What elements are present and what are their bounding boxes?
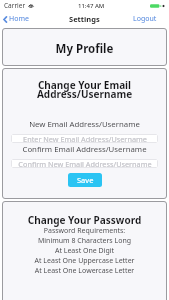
staticText: At Least One Digit <box>2 246 167 256</box>
staticText: At Least One Uppercase Letter <box>2 256 167 266</box>
button[interactable]: Home <box>0 11 35 27</box>
staticText: Change Your Email <box>2 78 167 92</box>
staticText: Home <box>9 14 29 24</box>
staticText: Address/Username <box>2 87 167 101</box>
staticText: Carrier <box>4 1 26 10</box>
staticText: Save <box>77 175 94 185</box>
staticText: Confirm New Email Address/Username <box>18 159 152 168</box>
staticText: Password Requirements: <box>2 226 167 236</box>
staticText: Change Your Password <box>2 213 167 227</box>
button[interactable]: Save <box>68 173 102 187</box>
staticText: Enter New Email Address/Username <box>23 134 147 143</box>
staticText: 11:47 AM <box>78 2 105 10</box>
staticText: At Least One Lowercase Letter <box>2 266 167 276</box>
staticText: My Profile <box>2 41 167 57</box>
button[interactable]: Logout <box>125 11 169 27</box>
button[interactable]: Enter New Email Address/Username <box>11 134 158 143</box>
staticText: Logout <box>133 14 157 24</box>
staticText: Confirm Email Address/Username <box>2 144 167 155</box>
button[interactable]: Confirm New Email Address/Username <box>11 159 158 168</box>
staticText: Minimum 8 Characters Long <box>2 236 167 246</box>
staticText: Settings <box>69 14 100 24</box>
staticText: New Email Address/Username <box>2 119 167 130</box>
